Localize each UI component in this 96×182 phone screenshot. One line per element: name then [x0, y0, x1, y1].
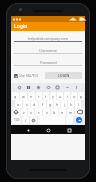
button[interactable]: n: [59, 108, 66, 116]
staticText: m: [69, 110, 73, 115]
staticText: /: [25, 118, 27, 123]
staticText: a: [17, 102, 20, 107]
button[interactable]: w: [20, 92, 27, 100]
button[interactable]: h: [54, 100, 60, 108]
button[interactable]: Username: [14, 47, 82, 54]
button[interactable]: z: [21, 108, 27, 116]
staticText: helpdesk.company.com: [28, 36, 68, 41]
button[interactable]: Keyboard tool 5: [65, 85, 70, 90]
button[interactable]: Recents: [65, 126, 73, 134]
staticText: w: [22, 94, 25, 99]
button[interactable]: Keyboard tool 2: [36, 85, 41, 90]
button[interactable]: Shift: [12, 108, 20, 116]
button[interactable]: v: [43, 108, 50, 116]
button[interactable]: Home: [44, 126, 52, 134]
button[interactable]: ?123: [12, 116, 21, 124]
button[interactable]: t: [43, 92, 49, 100]
staticText: u: [59, 94, 62, 99]
staticText: Login: [14, 23, 28, 30]
staticText: z: [23, 110, 25, 115]
button[interactable]: LOGIN: [45, 72, 82, 79]
button[interactable]: m: [67, 108, 74, 116]
button[interactable]: c: [35, 108, 42, 116]
staticText: p: [80, 94, 83, 99]
button[interactable]: Keyboard tool 4: [55, 85, 60, 90]
button[interactable]: Keyboard tool 1: [26, 85, 31, 90]
staticText: l: [78, 102, 79, 107]
button[interactable]: f: [39, 100, 46, 108]
button[interactable]: Password: [14, 59, 82, 66]
button[interactable]: q: [12, 92, 19, 100]
button[interactable]: /: [22, 116, 29, 124]
staticText: q: [14, 94, 17, 99]
staticText: Password: [40, 60, 57, 65]
staticText: k: [70, 102, 72, 107]
staticText: r: [38, 94, 40, 99]
staticText: .: [69, 118, 70, 123]
button[interactable]: l: [75, 100, 81, 108]
button[interactable]: Keyboard tool 6: [74, 85, 79, 90]
staticText: Use SSL/TLS: [19, 73, 39, 78]
staticText: h: [56, 102, 59, 107]
staticText: o: [73, 94, 76, 99]
staticText: v: [46, 110, 48, 115]
button[interactable]: s: [23, 100, 30, 108]
button[interactable]: .: [66, 116, 73, 124]
staticText: j: [64, 102, 65, 107]
staticText: s: [26, 102, 28, 107]
button[interactable]: o: [71, 92, 77, 100]
staticText: ?123: [14, 118, 20, 122]
button[interactable]: Keyboard tool 3: [46, 85, 51, 90]
button[interactable]: i: [64, 92, 70, 100]
button[interactable]: g: [47, 100, 53, 108]
staticText: e: [30, 94, 33, 99]
button[interactable]: e: [28, 92, 35, 100]
button[interactable]: y: [50, 92, 56, 100]
staticText: i: [67, 94, 68, 99]
button[interactable]: p: [78, 92, 84, 100]
button[interactable]: Use SSL/TLS: [14, 73, 41, 78]
button[interactable]: r: [36, 92, 42, 100]
button[interactable]: Enter: [76, 117, 82, 123]
button[interactable]: Emoji: [30, 116, 37, 124]
button[interactable]: k: [68, 100, 74, 108]
staticText: d: [33, 102, 36, 107]
button[interactable]: j: [61, 100, 67, 108]
button[interactable]: x: [28, 108, 34, 116]
button[interactable]: a: [15, 100, 22, 108]
button[interactable]: d: [31, 100, 38, 108]
staticText: b: [53, 110, 56, 115]
staticText: x: [30, 110, 32, 115]
button[interactable]: Keyboard tool 0: [17, 85, 22, 90]
staticText: n: [61, 110, 64, 115]
button[interactable]: Back: [24, 126, 32, 134]
staticText: Username: [39, 48, 57, 53]
button[interactable]: Backspace: [75, 108, 84, 116]
staticText: t: [45, 94, 47, 99]
staticText: f: [42, 102, 44, 107]
staticText: LOGIN: [58, 73, 70, 78]
staticText: g: [49, 102, 52, 107]
button[interactable]: u: [57, 92, 63, 100]
staticText: y: [52, 94, 54, 99]
button[interactable]: helpdesk.company.com: [14, 35, 82, 42]
button[interactable]: b: [51, 108, 58, 116]
staticText: c: [38, 110, 40, 115]
button[interactable]: Login: [11, 22, 85, 31]
